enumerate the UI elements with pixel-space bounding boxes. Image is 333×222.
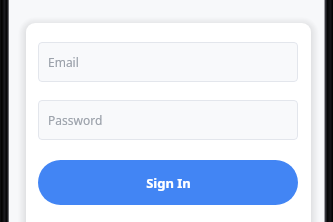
staticText: Sign In <box>146 174 191 192</box>
other: Device bezel <box>0 0 333 222</box>
button[interactable]: Password <box>38 100 298 140</box>
staticText: Password <box>48 112 103 128</box>
button[interactable]: Email <box>38 42 298 82</box>
staticText: Email <box>48 54 79 70</box>
button[interactable]: Sign In <box>38 160 298 205</box>
